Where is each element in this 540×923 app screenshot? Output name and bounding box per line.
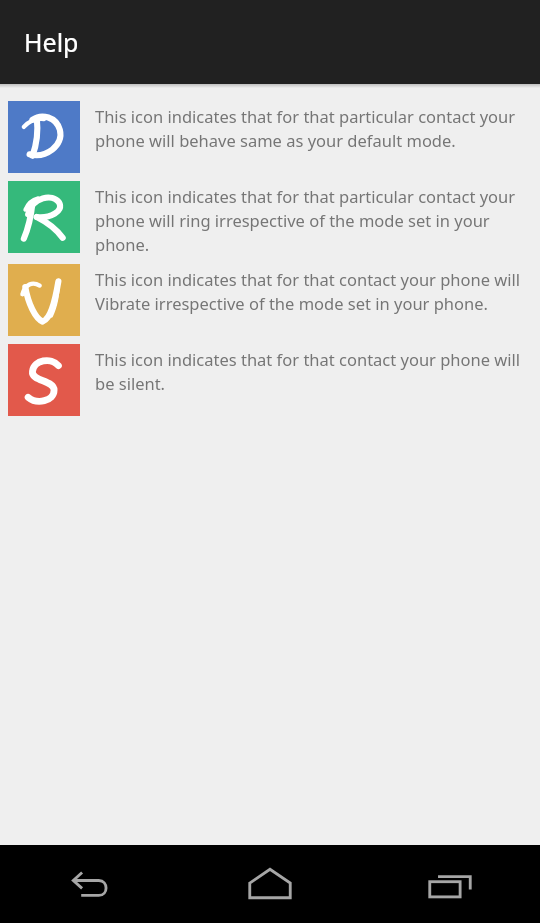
other: Ring mode icon xyxy=(8,181,80,253)
button[interactable]: Home xyxy=(180,845,360,923)
staticText: This icon indicates that for that partic… xyxy=(95,105,530,152)
button[interactable]: Ring mode icon xyxy=(0,173,540,256)
staticText: This icon indicates that for that partic… xyxy=(95,185,530,256)
other: Silent mode icon xyxy=(8,344,80,416)
staticText: This icon indicates that for that contac… xyxy=(95,348,530,395)
button[interactable]: Vibrate mode icon xyxy=(0,256,540,336)
button[interactable]: Recent apps xyxy=(360,845,540,923)
staticText: This icon indicates that for that contac… xyxy=(95,268,530,315)
staticText: Help xyxy=(24,25,79,59)
button[interactable]: Default mode icon xyxy=(0,93,540,173)
other: Vibrate mode icon xyxy=(8,264,80,336)
button[interactable]: Back xyxy=(0,845,180,923)
button[interactable]: Silent mode icon xyxy=(0,336,540,416)
other: Default mode icon xyxy=(8,101,80,173)
